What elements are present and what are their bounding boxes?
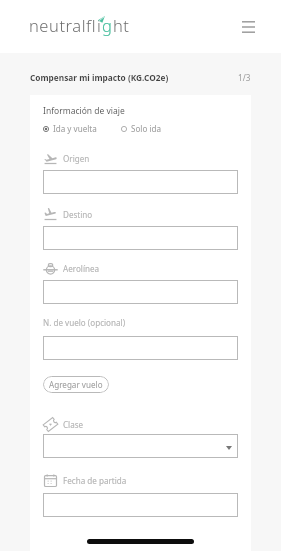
- staticText: Origen: [63, 153, 90, 164]
- button[interactable]: Agregar vuelo: [43, 376, 109, 393]
- staticText: Clase: [63, 419, 84, 430]
- staticText: Ida y vuelta: [53, 123, 97, 134]
- button[interactable]: Solo ida: [121, 123, 162, 134]
- button[interactable]: [43, 280, 238, 304]
- button[interactable]: [43, 493, 238, 517]
- button[interactable]: Menu: [235, 14, 261, 40]
- staticText: Agregar vuelo: [49, 379, 103, 390]
- button[interactable]: [43, 170, 238, 194]
- staticText: Solo ida: [131, 123, 162, 134]
- button[interactable]: [43, 226, 238, 250]
- staticText: N. de vuelo (opcional): [43, 317, 126, 328]
- staticText: ht: [113, 14, 130, 36]
- staticText: Información de viaje: [43, 105, 125, 117]
- staticText: Fecha de partida: [63, 475, 127, 486]
- staticText: g: [102, 14, 113, 36]
- staticText: neutralfl: [29, 14, 97, 36]
- staticText: 1/3: [238, 72, 251, 83]
- staticText: Aerolínea: [63, 263, 100, 274]
- button[interactable]: Ida y vuelta: [43, 123, 97, 134]
- staticText: i: [97, 14, 102, 36]
- button[interactable]: Clase: [43, 434, 238, 458]
- staticText: Compensar mi impacto (KG.CO2e): [30, 72, 169, 83]
- button[interactable]: [43, 336, 238, 360]
- staticText: Destino: [63, 209, 93, 220]
